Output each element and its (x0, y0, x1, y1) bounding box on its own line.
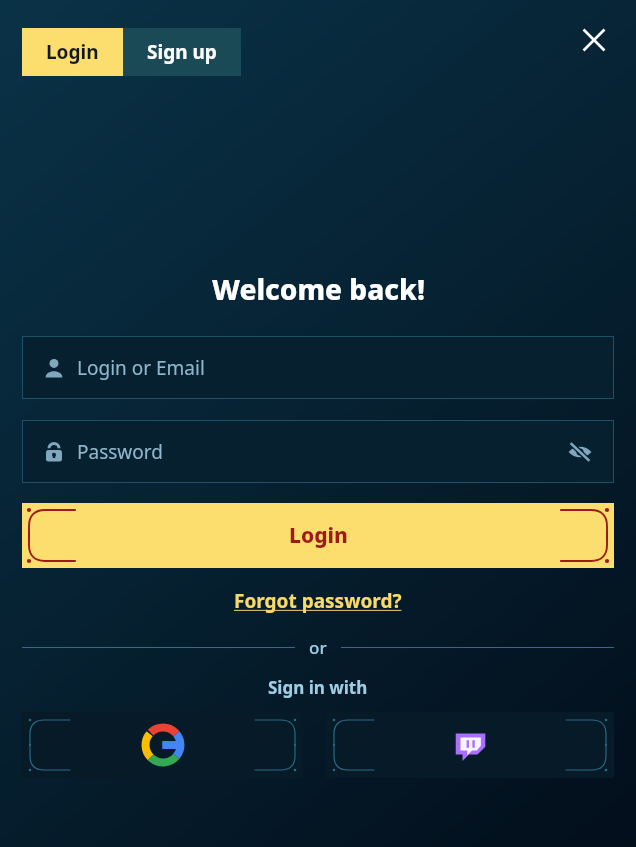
button[interactable]: Forgot password? (228, 585, 408, 617)
button[interactable]: Sign in with Google (22, 712, 303, 778)
button[interactable]: Password (22, 420, 614, 483)
button[interactable]: Show password (560, 432, 600, 472)
button[interactable]: Login (22, 28, 123, 76)
button[interactable]: Sign in with Twitch (326, 712, 614, 778)
staticText: Forgot password? (234, 588, 402, 614)
staticText: Login (46, 39, 99, 65)
staticText: Welcome back! (212, 270, 425, 308)
button[interactable]: Sign up (123, 28, 241, 76)
button[interactable]: Close (570, 16, 618, 64)
staticText: Sign in with (268, 676, 368, 699)
staticText: Sign up (147, 39, 217, 65)
button[interactable]: Login (22, 503, 614, 568)
staticText: Login (289, 521, 348, 550)
staticText: Login or Email (77, 355, 205, 381)
staticText: Password (77, 439, 163, 465)
button[interactable]: Login or Email (22, 336, 614, 399)
staticText: or (309, 636, 327, 659)
